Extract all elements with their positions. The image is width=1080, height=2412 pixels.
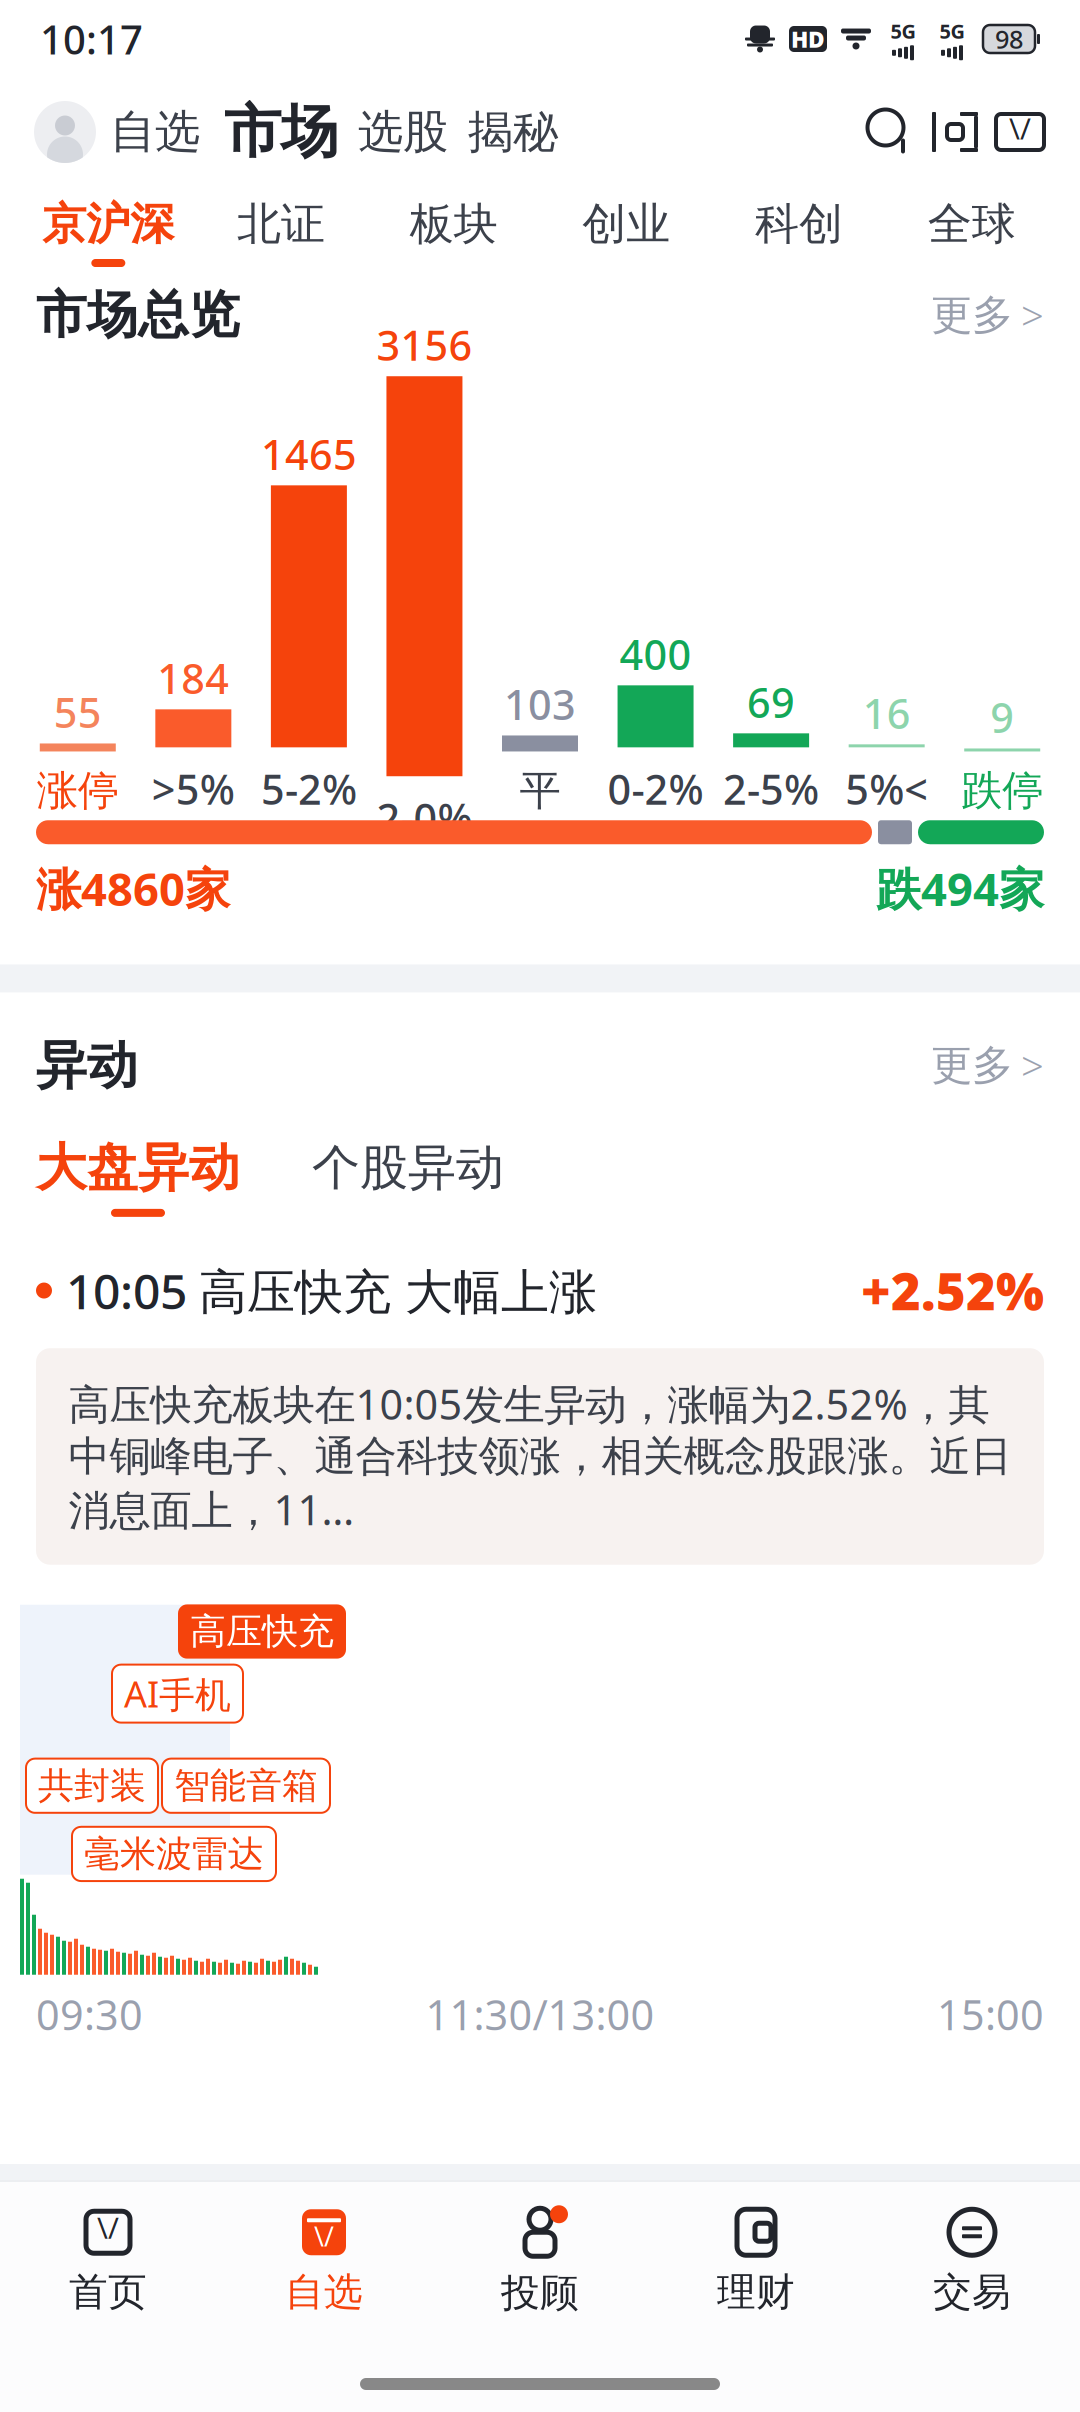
staticText: 98 xyxy=(995,22,1023,56)
button[interactable]: 科创 xyxy=(713,197,885,267)
staticText: 智能音箱 xyxy=(174,1764,318,1808)
staticText: >5% xyxy=(152,761,235,816)
button[interactable]: 消息 xyxy=(994,110,1046,154)
staticText: 全球 xyxy=(928,197,1016,251)
button[interactable]: \/ xyxy=(216,2206,432,2316)
staticText: 10:17 xyxy=(40,12,143,65)
button[interactable]: 创业 xyxy=(540,197,713,267)
staticText: 自选 xyxy=(110,104,200,160)
staticText: 16 xyxy=(863,685,911,740)
staticText: 交易 xyxy=(933,2268,1011,2316)
button[interactable]: 10:05 高压快充 大幅上涨 xyxy=(0,1257,1080,1565)
staticText: 个股异动 xyxy=(312,1138,504,1197)
staticText: 1465 xyxy=(261,426,357,481)
staticText: 5G xyxy=(890,18,915,44)
button[interactable]: 问 xyxy=(916,109,994,155)
staticText: 科创 xyxy=(755,197,843,251)
button[interactable]: 全球 xyxy=(885,197,1058,267)
staticText: 高压快充 xyxy=(190,1609,334,1654)
staticText: 高压快充板块在10:05发生异动，涨幅为2.52%，其中铜峰电子、通合科技领涨，… xyxy=(68,1376,1011,1537)
staticText: 5%< xyxy=(845,761,928,816)
button[interactable]: 京沪深 xyxy=(22,197,195,267)
staticText: 涨4860家 xyxy=(36,858,230,918)
staticText: \/ xyxy=(1009,108,1031,147)
staticText: 3156 xyxy=(376,317,472,372)
staticText: 投顾 xyxy=(501,2269,579,2317)
staticText: 揭秘 xyxy=(468,104,558,160)
staticText: \/ xyxy=(314,2218,334,2254)
button[interactable]: 揭秘 xyxy=(458,104,568,160)
staticText: HD xyxy=(791,24,825,54)
staticText: 2-5% xyxy=(723,761,819,816)
staticText: 103 xyxy=(504,677,576,731)
staticText: 异动 xyxy=(36,1034,138,1097)
staticText: 9 xyxy=(990,690,1014,744)
staticText: 跌停 xyxy=(961,765,1043,816)
button[interactable]: 市场 xyxy=(214,97,348,167)
staticText: 市场总览 xyxy=(36,284,240,346)
staticText: 69 xyxy=(747,674,795,729)
staticText: 跌494家 xyxy=(876,858,1044,918)
staticText: 京沪深 xyxy=(42,197,174,251)
staticText: 毫米波雷达 xyxy=(84,1832,264,1876)
staticText: 更多 xyxy=(931,1040,1013,1091)
staticText: 共封装 xyxy=(38,1764,146,1808)
staticText: 184 xyxy=(157,650,229,705)
button[interactable]: 大盘异动 xyxy=(36,1137,240,1217)
button[interactable]: 个人中心 xyxy=(34,101,96,163)
button[interactable]: 选股 xyxy=(348,104,458,160)
staticText: 10:05 高压快充 大幅上涨 xyxy=(66,1259,597,1322)
button[interactable]: 个股异动 xyxy=(240,1138,504,1215)
staticText: 5G xyxy=(939,18,964,44)
button[interactable]: 自选 xyxy=(96,104,214,160)
staticText: AI手机 xyxy=(124,1670,231,1718)
staticText: > xyxy=(1021,1039,1044,1092)
staticText: 0-2% xyxy=(608,761,704,816)
button[interactable]: 更多 xyxy=(931,1039,1044,1092)
staticText: 选股 xyxy=(358,104,448,160)
button[interactable]: 更多 xyxy=(931,289,1044,342)
button[interactable]: 理财 xyxy=(648,2206,864,2316)
staticText: 更多 xyxy=(931,290,1013,340)
button[interactable]: 板块 xyxy=(367,197,540,267)
button[interactable]: 搜索 xyxy=(864,106,916,158)
staticText: \/ xyxy=(97,2208,119,2247)
staticText: 首页 xyxy=(69,2268,147,2316)
staticText: 自选 xyxy=(285,2268,363,2316)
staticText: 理财 xyxy=(717,2268,795,2316)
staticText: 板块 xyxy=(410,197,498,251)
staticText: 创业 xyxy=(582,197,670,251)
staticText: +2.52% xyxy=(861,1257,1044,1324)
staticText: 平 xyxy=(519,765,560,816)
staticText: 北证 xyxy=(237,197,325,251)
staticText: 15:00 xyxy=(937,1987,1044,2042)
button[interactable]: 交易 xyxy=(864,2206,1080,2316)
button[interactable]: 北证 xyxy=(195,197,367,267)
staticText: > xyxy=(1021,289,1044,342)
staticText: 11:30/13:00 xyxy=(425,1987,654,2042)
staticText: 市场 xyxy=(224,97,338,167)
staticText: 55 xyxy=(54,685,102,739)
staticText: 大盘异动 xyxy=(36,1137,240,1199)
staticText: 涨停 xyxy=(37,765,119,816)
staticText: 09:30 xyxy=(36,1987,143,2042)
button[interactable]: \/ xyxy=(0,2206,216,2316)
staticText: 400 xyxy=(620,626,692,681)
button[interactable]: 投顾 xyxy=(432,2205,648,2317)
staticText: 2-0% xyxy=(376,790,472,845)
staticText: 5-2% xyxy=(261,761,357,816)
